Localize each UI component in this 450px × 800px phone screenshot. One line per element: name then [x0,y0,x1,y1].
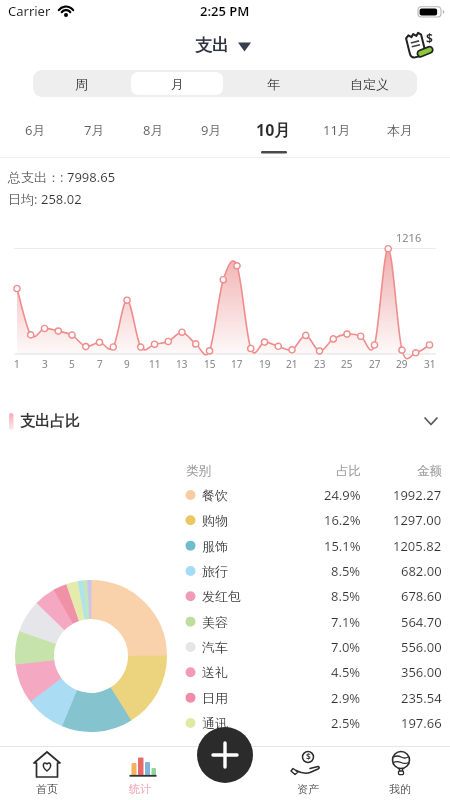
button[interactable]: 8月 [125,112,181,148]
staticText: 10月 [256,119,291,141]
staticText: 通讯 [202,715,228,731]
staticText: 19 [259,357,271,371]
button[interactable] [197,727,253,783]
staticText: 发红包 [202,588,241,604]
staticText: 美容 [202,614,228,630]
staticText: 日用 [202,690,228,706]
staticText: $ [306,751,311,763]
staticText: 13 [176,357,188,371]
button[interactable]: 资产 [276,746,340,800]
staticText: 235.54 [401,689,442,707]
button[interactable]: 年 [225,70,321,97]
staticText: 678.60 [401,587,442,605]
staticText: 首页 [36,782,58,796]
staticText: 统计 [129,782,151,796]
staticText: 8.5% [331,562,361,580]
staticText: 258.02 [41,190,82,208]
staticText: 197.66 [401,714,442,732]
staticText: 1 [14,357,20,371]
staticText: Carrier [8,2,51,20]
staticText: 7998.65 [67,168,116,186]
button[interactable]: 我的 [368,746,432,800]
staticText: 27 [369,357,381,371]
staticText: 日均: [8,190,41,208]
button[interactable]: 自定义 [321,70,417,97]
staticText: 自定义 [350,76,389,92]
staticText: 8.5% [331,587,361,605]
staticText: 356.00 [401,663,442,681]
button[interactable]: 月 [129,70,225,97]
staticText: 2.5% [331,714,361,732]
staticText: 564.70 [401,613,442,631]
staticText: 我的 [389,782,411,796]
staticText: 4.5% [331,663,361,681]
staticText: 9月 [201,121,222,139]
staticText: 月 [171,76,184,92]
staticText: 服饰 [202,538,228,554]
button[interactable]: 首页 [15,746,79,800]
staticText: 17 [231,357,243,371]
staticText: 送礼 [202,664,228,680]
staticText: 1216 [396,230,422,245]
staticText: 占比 [336,463,361,479]
staticText: 6月 [25,121,46,139]
staticText: 8月 [143,121,164,139]
staticText: 本月 [387,122,413,138]
staticText: 7.0% [331,638,361,656]
staticText: 1297.00 [393,511,442,529]
staticText: 购物 [202,512,228,528]
button[interactable]: 7月 [66,112,122,148]
staticText: 3 [42,357,48,371]
staticText: 资产 [297,782,319,796]
button[interactable]: 周 [33,70,129,97]
button[interactable]: 9月 [183,112,239,148]
button[interactable] [403,30,437,60]
button[interactable]: 统计 [108,746,172,800]
staticText: 9 [124,357,130,371]
staticText: 支出 [195,35,229,56]
staticText: 2.9% [331,689,361,707]
staticText: 29 [396,357,408,371]
staticText: 682.00 [401,562,442,580]
staticText: 15 [204,357,216,371]
staticText: 25 [341,357,353,371]
staticText: 年 [267,76,280,92]
button[interactable]: 本月 [372,112,428,148]
staticText: 7月 [84,121,105,139]
staticText: 总支出：: [8,168,67,186]
staticText: 1205.82 [393,537,442,555]
staticText: 21 [286,357,298,371]
staticText: 16.2% [324,511,361,529]
staticText: 2:25 PM [200,2,250,20]
button[interactable]: 11月 [309,112,365,148]
staticText: 周 [75,76,88,92]
button[interactable]: 6月 [7,112,63,148]
staticText: 23 [314,357,326,371]
staticText: 11月 [323,121,351,139]
button[interactable] [0,405,450,438]
staticText: 金额 [417,463,442,479]
staticText: $ [426,30,433,46]
button[interactable] [185,30,255,60]
staticText: 类别 [186,463,211,479]
staticText: 5 [69,357,75,371]
staticText: 餐饮 [202,487,228,503]
staticText: 31 [424,357,436,371]
button[interactable]: 10月 [245,112,301,148]
staticText: 汽车 [202,639,228,655]
staticText: 556.00 [401,638,442,656]
staticText: 旅行 [202,563,228,579]
staticText: 24.9% [324,486,361,504]
staticText: 1992.27 [393,486,442,504]
staticText: 支出占比 [20,412,80,431]
staticText: 7.1% [331,613,361,631]
staticText: 15.1% [324,537,361,555]
staticText: 11 [149,357,161,371]
staticText: 7 [97,357,103,371]
